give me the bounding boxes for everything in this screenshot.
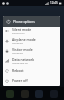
button[interactable]: App shortcut [21, 90, 29, 98]
button[interactable]: Reboot [3, 67, 60, 77]
staticText: Silent mode [12, 27, 32, 32]
button[interactable]: App shortcut [50, 90, 58, 98]
staticText: Phone options [13, 20, 35, 24]
button[interactable]: App shortcut [6, 90, 14, 98]
staticText: Visitor mode [12, 47, 33, 52]
button[interactable]: Airplane mode [3, 37, 60, 47]
button[interactable]: Data network [3, 57, 60, 67]
button[interactable]: Visitor mode [3, 47, 60, 57]
staticText: Mobile data ON [12, 62, 29, 65]
button[interactable]: Power off [3, 77, 60, 86]
staticText: Turned off [12, 42, 23, 45]
button[interactable]: App shortcut [35, 90, 43, 98]
staticText: 12:45 [50, 1, 58, 5]
button[interactable]: Silent mode [3, 27, 60, 37]
staticText: Reboot [12, 68, 24, 73]
staticText: Airplane mode [12, 37, 36, 42]
staticText: Sound is ON [12, 32, 25, 35]
staticText: Turned off [12, 52, 23, 55]
staticText: Power off [12, 78, 28, 83]
staticText: Data network [12, 57, 35, 62]
